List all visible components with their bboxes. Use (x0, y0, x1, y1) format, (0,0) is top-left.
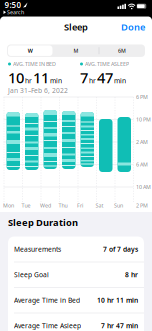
staticText: Average Time Asleep (14, 321, 81, 330)
staticText: Wed (40, 202, 51, 209)
staticText: Sleep Duration (8, 216, 78, 229)
staticText: 6 PM (136, 93, 148, 101)
button[interactable]: 6M (99, 44, 145, 57)
staticText: 10 PM (136, 116, 151, 123)
staticText: Fri (77, 202, 83, 209)
staticText: Thu (58, 202, 67, 209)
staticText: AVG. TIME IN BED (13, 60, 56, 68)
staticText: 7 hr 47 min (101, 321, 138, 330)
staticText: 11 (33, 68, 49, 87)
staticText: 2 AM (136, 138, 148, 146)
staticText: Sat (95, 202, 103, 209)
staticText: Sleep Goal (14, 270, 49, 279)
staticText: min (50, 76, 62, 85)
staticText: W (28, 47, 33, 54)
staticText: 7 (80, 68, 88, 87)
staticText: 10 (8, 68, 24, 87)
staticText: M (73, 47, 78, 54)
staticText: Average Time in Bed (14, 296, 80, 305)
staticText: 6 AM (136, 161, 148, 168)
staticText: Measurements (14, 245, 61, 254)
staticText: 7 of 7 days (103, 245, 138, 254)
staticText: 2 PM (136, 202, 148, 209)
button[interactable]: W (7, 44, 53, 57)
staticText: hr (25, 76, 32, 85)
staticText: Sun (114, 202, 123, 209)
staticText: 47 (97, 68, 113, 87)
staticText: hr (89, 76, 96, 85)
button[interactable]: Done (115, 21, 145, 33)
staticText: 10 AM (136, 183, 151, 191)
staticText: Tue (21, 202, 30, 209)
staticText: 6M (118, 47, 126, 54)
staticText: Mon (3, 202, 14, 209)
staticText: Sleep (64, 21, 88, 33)
staticText: AVG. TIME ASLEEP (85, 60, 129, 68)
staticText: 8 hr (125, 270, 138, 279)
button[interactable]: M (53, 44, 99, 57)
staticText: 10 hr 11 min (97, 296, 138, 305)
staticText: min (114, 76, 126, 85)
staticText: 9:50 (4, 0, 21, 10)
staticText: Search (7, 9, 24, 16)
staticText: Done (121, 21, 145, 33)
staticText: Jan 31–Feb 6, 2022 (8, 86, 68, 95)
